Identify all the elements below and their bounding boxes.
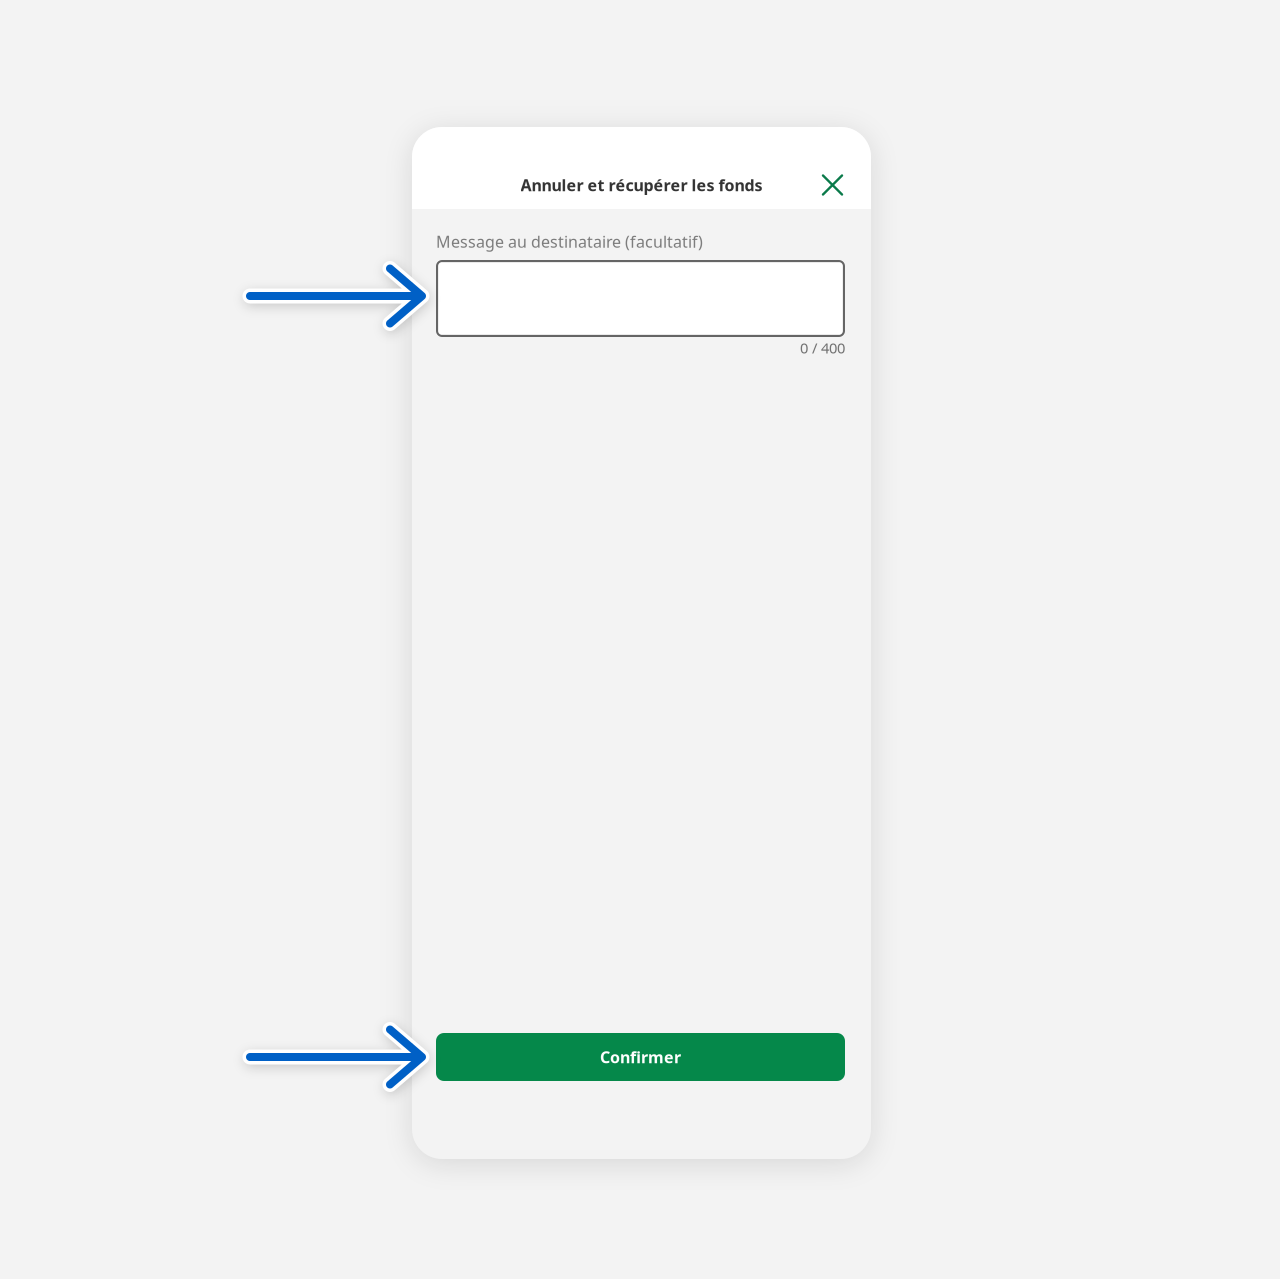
button[interactable]: Confirmer xyxy=(436,1033,845,1081)
staticText: 0 / 400 xyxy=(800,338,845,357)
staticText: Confirmer xyxy=(600,1046,681,1068)
staticText: Message au destinataire (facultatif) xyxy=(436,231,703,252)
staticText: Annuler et récupérer les fonds xyxy=(520,174,762,196)
button[interactable]: Fermer xyxy=(811,163,854,206)
